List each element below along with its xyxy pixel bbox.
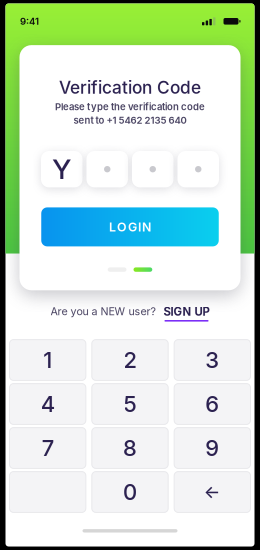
staticText: LOGIN (109, 219, 151, 234)
button[interactable]: 6 (174, 384, 250, 424)
staticText: Are you a NEW user? (50, 305, 155, 318)
button[interactable]: 2 (92, 340, 168, 380)
button[interactable]: 4 (9, 384, 86, 424)
button[interactable]: Digit Y (41, 151, 82, 187)
button[interactable]: 9 (174, 428, 250, 468)
staticText: 8 (123, 435, 137, 461)
staticText: 6 (205, 391, 219, 417)
button[interactable]: Delete (174, 472, 250, 512)
staticText: SIGN UP (163, 305, 209, 318)
staticText: 0 (123, 479, 137, 505)
staticText: 3 (205, 347, 219, 373)
button[interactable]: Empty digit (86, 151, 128, 187)
staticText: Y (52, 152, 71, 186)
staticText: 4 (41, 391, 55, 417)
button[interactable]: 7 (9, 428, 86, 468)
button[interactable]: LOGIN (41, 207, 219, 246)
staticText: 1 (43, 347, 52, 373)
button[interactable]: Empty digit (132, 151, 173, 187)
staticText: 9:41 (20, 15, 39, 27)
button[interactable]: 8 (92, 428, 168, 468)
staticText: Verification Code (59, 77, 201, 98)
staticText: ← (204, 481, 221, 502)
button[interactable]: 1 (9, 340, 86, 380)
staticText: 5 (123, 391, 136, 417)
button[interactable]: Empty digit (177, 151, 219, 187)
button[interactable]: Are you a NEW user? (50, 305, 209, 322)
button[interactable]: 5 (92, 384, 168, 424)
staticText: sent to +1 5462 2135 640 (73, 114, 186, 126)
button[interactable]: 3 (174, 340, 250, 380)
staticText: 7 (42, 435, 54, 461)
staticText: 2 (123, 347, 136, 373)
staticText: Please type the verification code (55, 101, 205, 112)
staticText: 9 (205, 435, 219, 461)
button[interactable]: 0 (92, 472, 168, 512)
